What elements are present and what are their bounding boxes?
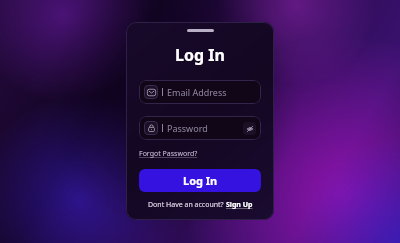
button[interactable]: Sign Up (226, 200, 253, 210)
staticText: Forgot Password? (139, 149, 198, 159)
staticText: Log In (183, 173, 218, 188)
staticText: Sign Up (226, 200, 253, 210)
button[interactable]: Password (139, 116, 261, 140)
button[interactable]: Show password (243, 122, 256, 135)
staticText: Dont Have an account? (148, 200, 226, 210)
button[interactable]: Email Address (139, 80, 261, 104)
button[interactable]: Log In (139, 169, 261, 192)
staticText: Log In (175, 44, 225, 66)
button[interactable]: Forgot Password? (139, 149, 198, 159)
staticText: Email Address (167, 86, 227, 98)
staticText: Password (167, 122, 208, 134)
